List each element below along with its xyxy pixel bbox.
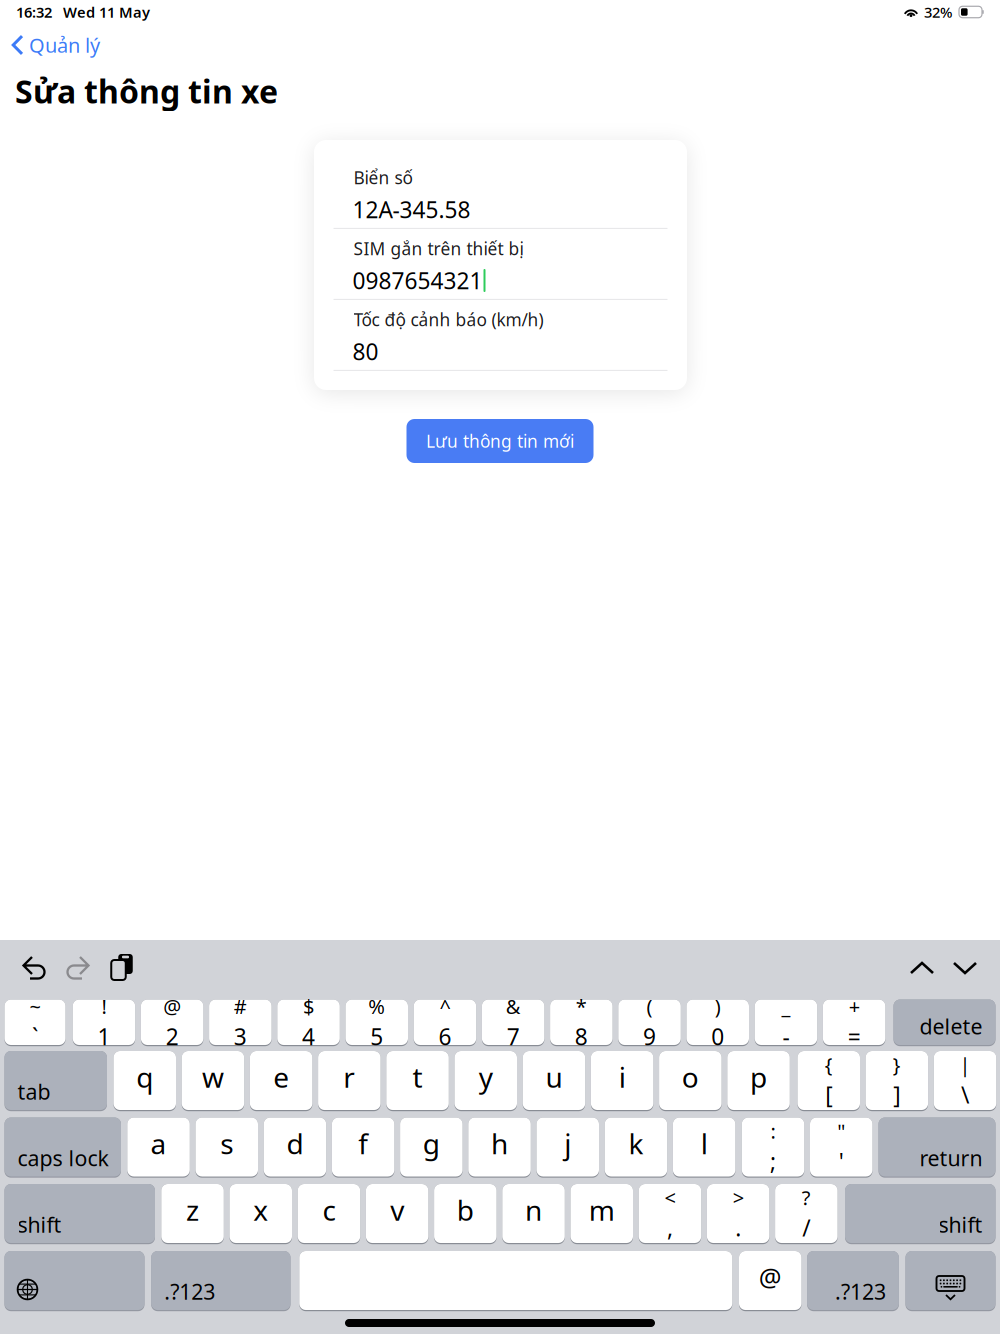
button[interactable]: o — [659, 1051, 722, 1110]
button[interactable]: q — [113, 1051, 176, 1110]
staticText: 0987654321 — [352, 265, 482, 295]
button[interactable]: s — [195, 1117, 258, 1176]
button[interactable]: x — [229, 1184, 292, 1243]
button[interactable]: return — [878, 1117, 995, 1176]
button[interactable]: ) — [686, 999, 749, 1045]
button[interactable]: ( — [618, 999, 681, 1045]
button[interactable]: Next keyboard — [4, 1251, 144, 1310]
button[interactable]: < — [639, 1184, 701, 1243]
button[interactable]: v — [366, 1184, 428, 1243]
staticText: shift — [938, 1210, 982, 1239]
button[interactable]: ^ — [414, 999, 476, 1045]
button[interactable]: caps lock — [4, 1117, 121, 1176]
staticText: 5 — [370, 1021, 383, 1052]
button[interactable]: @ — [739, 1251, 801, 1310]
staticText: Wed 11 May — [63, 2, 150, 22]
staticText: - — [782, 1021, 789, 1052]
staticText: 3 — [234, 1021, 247, 1052]
staticText: f — [358, 1125, 368, 1162]
button[interactable]: Previous field — [909, 960, 935, 976]
staticText: \ — [961, 1080, 969, 1110]
staticText: z — [186, 1191, 199, 1229]
staticText: = — [848, 1021, 861, 1052]
staticText: .?123 — [835, 1277, 886, 1306]
button[interactable]: z — [161, 1184, 224, 1243]
staticText: l — [701, 1125, 708, 1162]
staticText: n — [525, 1191, 542, 1229]
button[interactable]: @ — [141, 999, 203, 1045]
button[interactable]: % — [345, 999, 408, 1045]
button[interactable]: Hide keyboard — [905, 1251, 995, 1310]
button[interactable]: ? — [775, 1184, 838, 1243]
button[interactable]: .?123 — [151, 1251, 290, 1310]
staticText: b — [457, 1191, 474, 1229]
staticText: s — [220, 1125, 233, 1162]
button[interactable]: } — [866, 1051, 928, 1110]
staticText: 16:32 — [16, 2, 52, 22]
button[interactable]: Redo — [65, 955, 91, 981]
button[interactable]: # — [209, 999, 272, 1045]
button[interactable]: | — [934, 1051, 996, 1110]
button[interactable]: e — [250, 1051, 312, 1110]
button[interactable]: i — [591, 1051, 653, 1110]
button[interactable]: * — [550, 999, 613, 1045]
button[interactable]: delete — [893, 999, 995, 1045]
staticText: @ — [759, 1260, 782, 1294]
button[interactable]: ! — [73, 999, 135, 1045]
staticText: ( — [647, 993, 653, 1019]
button[interactable]: b — [434, 1184, 497, 1243]
button[interactable]: h — [468, 1117, 531, 1176]
staticText: .?123 — [164, 1277, 215, 1306]
staticText: | — [959, 1051, 970, 1078]
button[interactable]: m — [570, 1184, 633, 1243]
button[interactable]: .?123 — [807, 1251, 899, 1310]
button[interactable]: Lưu thông tin mới — [406, 419, 593, 463]
button[interactable]: Paste — [109, 953, 135, 981]
button[interactable]: Undo — [21, 955, 47, 981]
button[interactable]: + — [823, 999, 885, 1045]
button[interactable]: l — [673, 1117, 735, 1176]
button[interactable]: & — [482, 999, 544, 1045]
staticText: 12A-345.58 — [352, 194, 470, 224]
staticText: ` — [32, 1021, 38, 1052]
button[interactable]: shift — [4, 1184, 155, 1243]
button[interactable]: r — [318, 1051, 381, 1110]
button[interactable]: ~ — [4, 999, 65, 1045]
staticText: Sửa thông tin xe — [15, 70, 278, 112]
button[interactable]: y — [454, 1051, 517, 1110]
button[interactable]: " — [810, 1117, 872, 1176]
staticText: } — [893, 1051, 901, 1078]
button[interactable]: _ — [755, 999, 817, 1045]
button[interactable]: k — [605, 1117, 667, 1176]
staticText: : — [770, 1118, 775, 1144]
button[interactable]: shift — [845, 1184, 995, 1243]
button[interactable]: j — [536, 1117, 599, 1176]
button[interactable]: > — [707, 1184, 769, 1243]
button[interactable]: w — [182, 1051, 244, 1110]
staticText: y — [479, 1058, 493, 1096]
button[interactable]: g — [400, 1117, 463, 1176]
staticText: j — [564, 1125, 571, 1162]
button[interactable]: tab — [4, 1051, 107, 1110]
button[interactable]: u — [523, 1051, 585, 1110]
button[interactable]: n — [502, 1184, 565, 1243]
staticText: v — [390, 1191, 404, 1229]
button[interactable]: $ — [277, 999, 340, 1045]
button[interactable]: p — [727, 1051, 790, 1110]
button[interactable]: : — [742, 1117, 804, 1176]
staticText: , — [667, 1213, 673, 1243]
staticText: ^ — [439, 993, 450, 1019]
staticText: % — [368, 993, 385, 1019]
staticText: @ — [163, 993, 181, 1019]
button[interactable]: a — [127, 1117, 190, 1176]
button[interactable]: { — [797, 1051, 860, 1110]
staticText: ; — [770, 1146, 776, 1176]
button[interactable]: c — [298, 1184, 360, 1243]
staticText: * — [576, 993, 587, 1019]
button[interactable]: f — [332, 1117, 394, 1176]
button[interactable]: Next field — [952, 960, 978, 976]
button[interactable]: Quản lý — [9, 29, 102, 61]
button[interactable]: t — [386, 1051, 449, 1110]
button[interactable]: d — [264, 1117, 326, 1176]
